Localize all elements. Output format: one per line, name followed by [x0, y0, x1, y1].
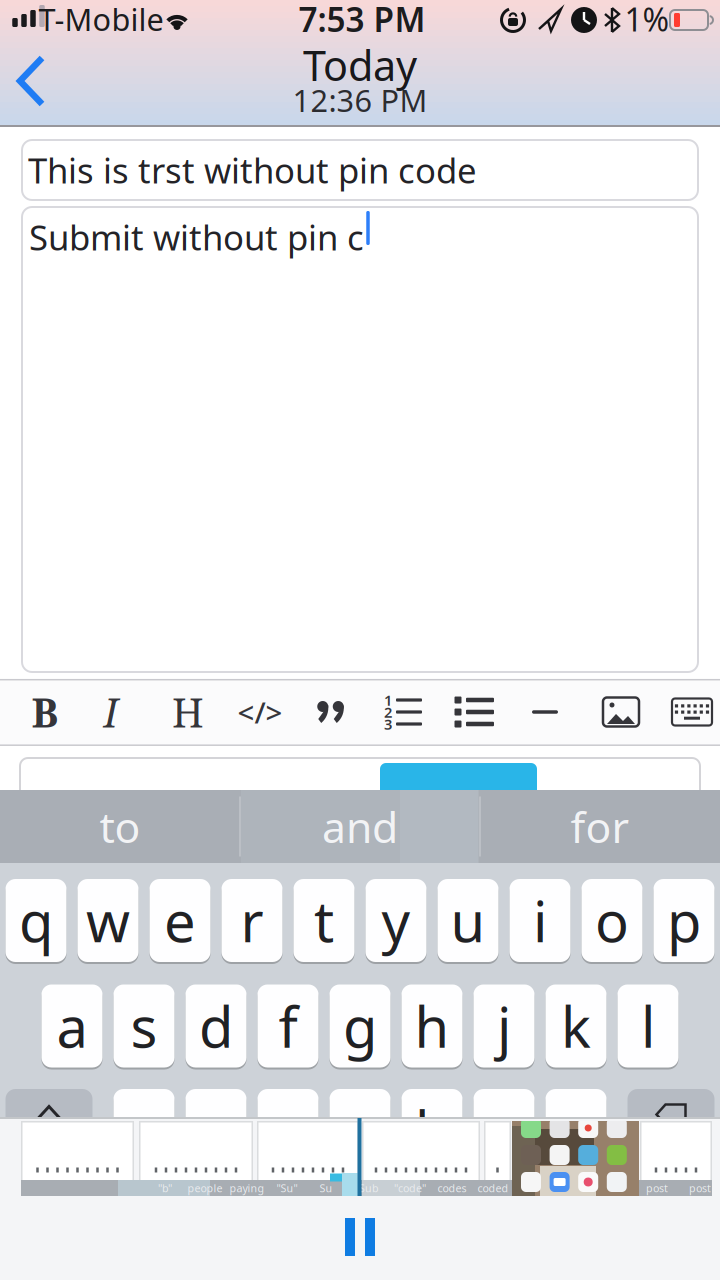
button[interactable]: k — [545, 983, 606, 1069]
button[interactable]: d — [185, 983, 246, 1069]
button[interactable]: z — [113, 1087, 174, 1173]
staticText: l — [641, 989, 655, 1063]
button[interactable]: b — [401, 1087, 462, 1173]
button[interactable]: x — [185, 1087, 246, 1173]
staticText: i — [533, 883, 547, 958]
button[interactable]: Submit — [380, 763, 537, 797]
staticText: v — [346, 1093, 374, 1168]
staticText: B — [31, 685, 58, 739]
staticText: u — [450, 883, 485, 958]
button[interactable]: g — [329, 983, 390, 1069]
button[interactable]: Hide keyboard — [664, 685, 720, 739]
button[interactable]: Delete — [627, 1089, 714, 1172]
button[interactable]: Horizontal rule — [517, 685, 573, 739]
button[interactable]: Bulleted list — [447, 685, 503, 739]
staticText: for — [570, 798, 629, 855]
staticText: z — [131, 1093, 157, 1168]
staticText: g — [343, 989, 377, 1063]
button[interactable]: Back — [11, 51, 51, 111]
button[interactable]: o — [581, 877, 642, 963]
staticText: o — [595, 883, 629, 958]
button[interactable]: v — [329, 1087, 390, 1173]
button[interactable]: t — [293, 877, 354, 963]
staticText: coded — [477, 1181, 508, 1195]
button[interactable]: r — [221, 877, 282, 963]
button[interactable]: u — [437, 877, 498, 963]
staticText: t — [314, 883, 334, 958]
staticText: j — [497, 989, 511, 1063]
staticText: </> — [237, 692, 282, 731]
button[interactable]: a — [41, 983, 102, 1069]
button[interactable]: for — [500, 795, 700, 857]
button[interactable]: Bold — [17, 685, 73, 739]
staticText: d — [199, 989, 233, 1063]
staticText: e — [164, 883, 196, 958]
button[interactable]: Numbered list — [377, 685, 433, 739]
button[interactable]: f — [257, 983, 318, 1069]
staticText: Today — [303, 38, 417, 92]
button[interactable]: e — [149, 877, 210, 963]
button[interactable]: l — [617, 983, 678, 1069]
staticText: Sub — [359, 1181, 379, 1195]
button[interactable]: w — [77, 877, 138, 963]
staticText: post — [646, 1181, 668, 1195]
staticText: Su — [319, 1181, 332, 1195]
staticText: "code" — [394, 1181, 426, 1195]
staticText: paying — [229, 1181, 264, 1195]
staticText: y — [381, 883, 410, 958]
button[interactable]: Pause — [335, 1212, 385, 1262]
staticText: "Su" — [276, 1181, 297, 1195]
staticText: r — [240, 883, 263, 958]
staticText: This is trst without pin code — [28, 147, 477, 193]
staticText: 1 — [384, 690, 392, 710]
staticText: a — [56, 989, 87, 1063]
staticText: post — [689, 1181, 711, 1195]
button[interactable]: m — [545, 1087, 606, 1173]
button[interactable]: h — [401, 983, 462, 1069]
staticText: b — [415, 1093, 449, 1168]
staticText: Submit without pin c — [29, 214, 364, 260]
staticText: n — [486, 1093, 521, 1168]
staticText: 1% — [624, 0, 669, 40]
button[interactable]: to — [20, 795, 220, 857]
staticText: c — [274, 1093, 301, 1168]
button[interactable]: y — [365, 877, 426, 963]
staticText: and — [322, 798, 398, 855]
button[interactable]: and — [260, 795, 460, 857]
staticText: 3 — [384, 714, 392, 734]
button[interactable]: q — [5, 877, 66, 963]
staticText: x — [201, 1093, 231, 1168]
button[interactable]: c — [257, 1087, 318, 1173]
button[interactable]: Shift — [5, 1089, 92, 1172]
staticText: people — [187, 1181, 222, 1195]
button[interactable]: j — [473, 983, 534, 1069]
staticText: m — [550, 1093, 602, 1168]
staticText: H — [172, 685, 204, 739]
button[interactable]: Heading — [160, 685, 216, 739]
staticText: p — [667, 883, 701, 958]
staticText: s — [130, 989, 157, 1063]
button[interactable]: Quote — [303, 685, 359, 739]
staticText: h — [414, 989, 449, 1063]
button[interactable]: i — [509, 877, 570, 963]
staticText: "b" — [158, 1181, 172, 1195]
staticText: 12:36 PM — [292, 80, 427, 120]
staticText: w — [86, 883, 130, 958]
staticText: k — [561, 989, 591, 1063]
staticText: 7:53 PM — [298, 0, 425, 41]
button[interactable]: Insert image — [593, 685, 649, 739]
staticText: q — [19, 883, 53, 958]
staticText: T-Mobile — [38, 0, 163, 39]
button[interactable]: Italic — [83, 685, 139, 739]
staticText: f — [278, 989, 297, 1063]
button[interactable]: Code — [232, 685, 288, 739]
button[interactable]: s — [113, 983, 174, 1069]
staticText: to — [99, 798, 140, 855]
button[interactable]: p — [653, 877, 714, 963]
staticText: I — [103, 685, 118, 739]
button[interactable]: n — [473, 1087, 534, 1173]
staticText: codes — [437, 1181, 466, 1195]
staticText: 2 — [384, 702, 392, 722]
